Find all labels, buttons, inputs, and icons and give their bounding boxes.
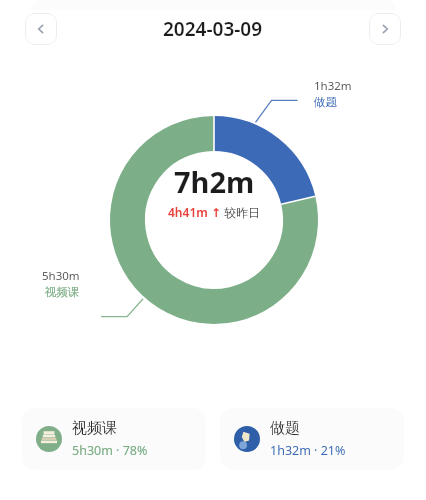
staticText: 1h32m	[314, 78, 352, 94]
button[interactable]: 做题	[220, 408, 404, 470]
button[interactable]: Previous day	[25, 13, 57, 45]
staticText: 做题	[314, 95, 337, 109]
staticText: 较昨日	[224, 205, 260, 220]
staticText: 做题	[270, 419, 300, 438]
staticText: 4h41m ↑	[168, 204, 221, 220]
staticText: 7h2m	[174, 162, 255, 201]
staticText: 5h30m	[42, 268, 80, 284]
staticText: 视频课	[72, 419, 117, 438]
staticText: 视频课	[45, 285, 80, 299]
button[interactable]: 视频课	[22, 408, 206, 470]
staticText: 5h30m · 78%	[72, 442, 148, 459]
staticText: 2024-03-09	[163, 16, 263, 42]
staticText: 1h32m · 21%	[270, 442, 346, 459]
button[interactable]: Next day	[369, 13, 401, 45]
